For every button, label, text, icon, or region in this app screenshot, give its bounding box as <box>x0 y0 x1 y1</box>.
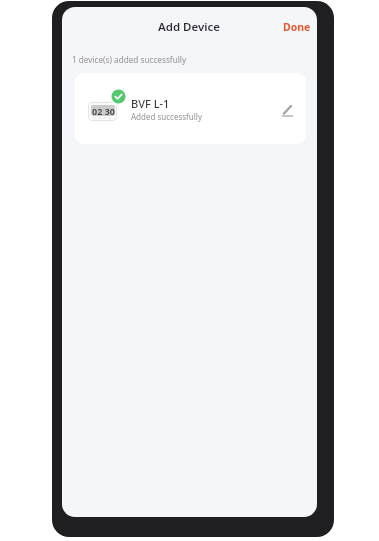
button[interactable]: 02 30 <box>75 73 306 144</box>
button[interactable] <box>281 104 294 117</box>
staticText: Add Device <box>158 19 221 35</box>
staticText: 1 device(s) added successfully <box>72 54 187 65</box>
button[interactable]: Done <box>283 20 311 34</box>
staticText: Done <box>283 20 311 34</box>
staticText: Added successfully <box>131 111 202 122</box>
staticText: BVF L-1 <box>131 96 170 111</box>
staticText: 02 30 <box>92 105 115 116</box>
